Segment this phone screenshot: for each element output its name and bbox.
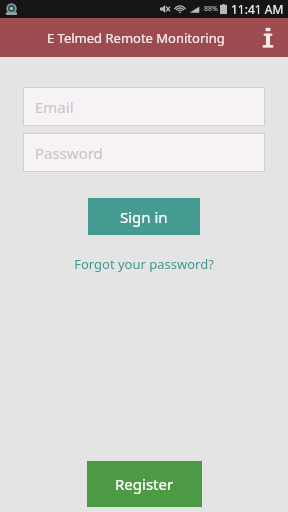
staticText: Sign in [120, 207, 168, 227]
button[interactable]: Sign in [88, 198, 200, 235]
staticText: 88% [204, 4, 218, 14]
staticText: 11:41 AM [231, 1, 284, 17]
staticText: Register [115, 474, 174, 494]
button[interactable]: Forgot your password? [66, 252, 222, 276]
button[interactable]: Password [23, 133, 265, 172]
button[interactable]: Register [87, 461, 202, 507]
button[interactable]: Info [248, 18, 288, 57]
staticText: E Telmed Remote Monitoring [47, 29, 225, 47]
button[interactable]: Email [23, 87, 265, 126]
staticText: Forgot your password? [74, 255, 214, 273]
staticText: Email [35, 97, 74, 117]
staticText: Password [35, 143, 103, 163]
